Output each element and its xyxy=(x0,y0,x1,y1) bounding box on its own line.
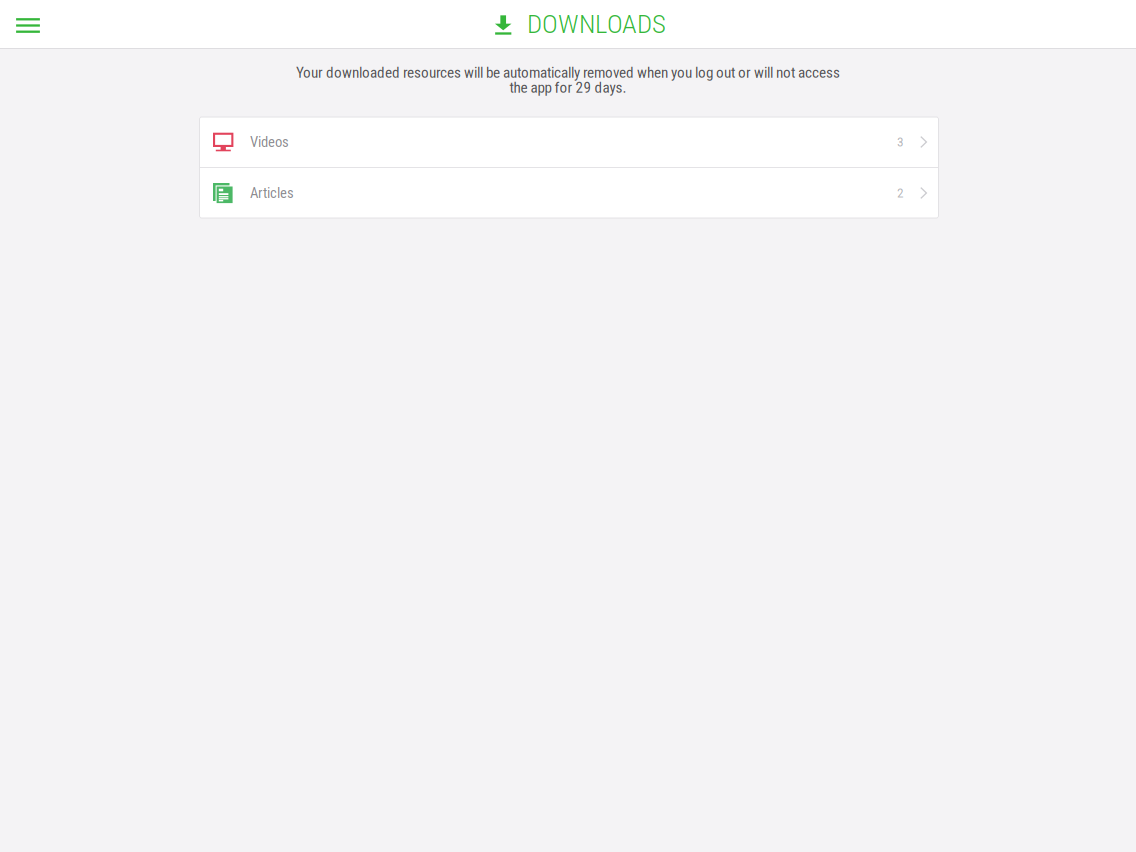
button[interactable]: Menu xyxy=(8,0,48,48)
staticText: Videos xyxy=(250,133,289,151)
button[interactable]: Articles xyxy=(199,168,938,218)
button[interactable]: Videos xyxy=(199,117,938,167)
staticText: 2 xyxy=(897,185,904,201)
staticText: Your downloaded resources will be automa… xyxy=(296,64,840,81)
staticText: 3 xyxy=(897,134,904,150)
staticText: DOWNLOADS xyxy=(527,8,666,40)
staticText: the app for 29 days. xyxy=(509,79,626,96)
staticText: Articles xyxy=(250,184,294,202)
